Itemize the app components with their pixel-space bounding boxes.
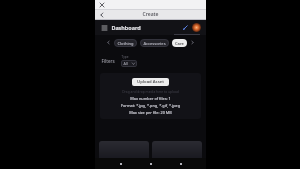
button[interactable]: Edit — [181, 23, 190, 32]
button[interactable] — [152, 141, 202, 158]
button[interactable]: Close — [98, 1, 106, 9]
button[interactable]: Upload Asset — [132, 78, 169, 86]
button[interactable]: Menu — [100, 23, 109, 32]
button[interactable]: Scroll left — [105, 39, 112, 46]
staticText: Drag and drop media here to upload — [104, 89, 197, 93]
staticText: Max number of files: 1 — [104, 96, 197, 101]
button[interactable]: Scroll right — [189, 39, 196, 46]
staticText: Create — [142, 11, 159, 18]
staticText: Format: *.jpg, *.png, *.gif, *.jpeg — [104, 103, 197, 108]
button[interactable]: Back — [116, 159, 125, 168]
button[interactable]: Profile — [192, 23, 201, 32]
button[interactable]: Recents — [176, 159, 185, 168]
staticText: All — [123, 61, 128, 66]
staticText: Type — [121, 55, 129, 59]
button[interactable]: Home — [146, 159, 155, 168]
staticText: Care — [175, 41, 184, 46]
staticText: Upload Asset — [137, 79, 164, 85]
button[interactable]: Back — [98, 11, 106, 19]
staticText: Accessories — [143, 41, 166, 46]
staticText: Dashboard — [111, 24, 141, 31]
button[interactable]: Clothing — [114, 39, 137, 47]
staticText: Max size per file: 20 MB — [104, 110, 197, 115]
staticText: Clothing — [117, 41, 134, 46]
staticText: Filters — [101, 58, 115, 64]
button[interactable] — [99, 141, 149, 158]
button[interactable]: All — [121, 60, 137, 67]
button[interactable]: Care — [172, 39, 187, 47]
button[interactable]: Accessories — [140, 39, 169, 47]
